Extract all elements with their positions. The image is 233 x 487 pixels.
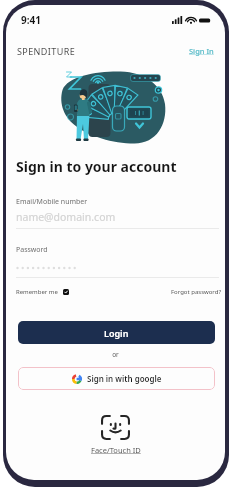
staticText: or — [6, 350, 225, 359]
staticText: 9:41 — [21, 13, 41, 27]
staticText: SPENDITURE — [17, 45, 76, 57]
staticText: Password — [16, 245, 48, 255]
staticText: Face/Touch ID — [91, 445, 141, 455]
staticText: Sign in with google — [87, 373, 162, 384]
button[interactable]: Forgot password? — [171, 288, 222, 296]
button[interactable]: Face/Touch ID — [6, 415, 225, 455]
staticText: name@domain.com — [16, 210, 116, 224]
button[interactable]: Remember me — [16, 288, 69, 296]
button[interactable]: Sign in with google — [18, 367, 215, 390]
button[interactable]: Sign In — [189, 46, 214, 56]
staticText: Login — [104, 327, 129, 339]
staticText: Remember me — [16, 288, 58, 296]
staticText: Sign In — [189, 46, 214, 56]
staticText: Forgot password? — [171, 288, 222, 296]
staticText: Email/Mobile number — [16, 197, 88, 207]
button[interactable]: Login — [18, 321, 215, 344]
staticText: Sign in to your account — [16, 157, 177, 176]
